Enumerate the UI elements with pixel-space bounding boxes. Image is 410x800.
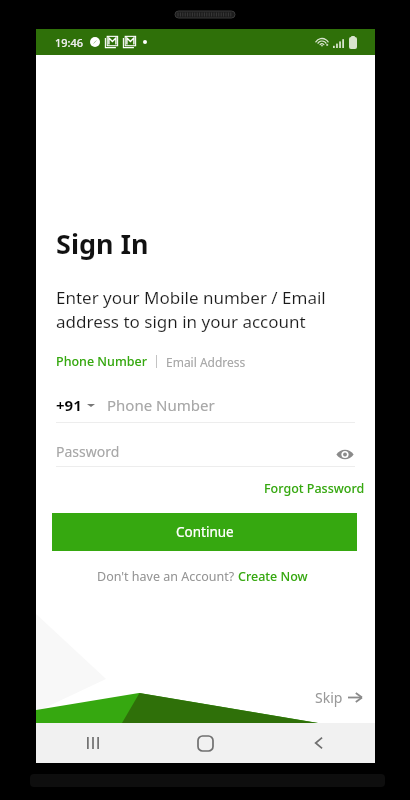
staticText: Enter your Mobile number / Email address… xyxy=(56,286,326,333)
button[interactable]: Forgot Password xyxy=(264,480,365,497)
button[interactable]: Show password xyxy=(325,436,365,472)
button[interactable]: Continue xyxy=(52,513,357,551)
staticText: Phone Number xyxy=(56,353,147,370)
staticText: Forgot Password xyxy=(264,480,365,497)
staticText: Email Address xyxy=(166,354,246,370)
staticText: Create Now xyxy=(238,568,308,585)
staticText: Sign In xyxy=(56,225,149,262)
staticText: Don't have an Account? xyxy=(97,568,238,585)
staticText: Skip xyxy=(315,688,343,707)
staticText: 19:46 xyxy=(55,35,84,50)
button[interactable]: Back xyxy=(262,723,375,763)
button[interactable]: Skip xyxy=(315,688,363,707)
button[interactable]: +91 xyxy=(56,395,95,415)
button[interactable]: Home xyxy=(149,723,262,763)
button[interactable]: Phone Number xyxy=(56,353,147,370)
button[interactable]: Recents xyxy=(36,723,149,763)
staticText: Password xyxy=(56,442,120,461)
button[interactable]: Create Now xyxy=(238,568,308,585)
staticText: Phone Number xyxy=(107,395,215,415)
staticText: +91 xyxy=(56,395,82,415)
button[interactable]: Email Address xyxy=(166,354,246,370)
staticText: Continue xyxy=(176,523,234,541)
